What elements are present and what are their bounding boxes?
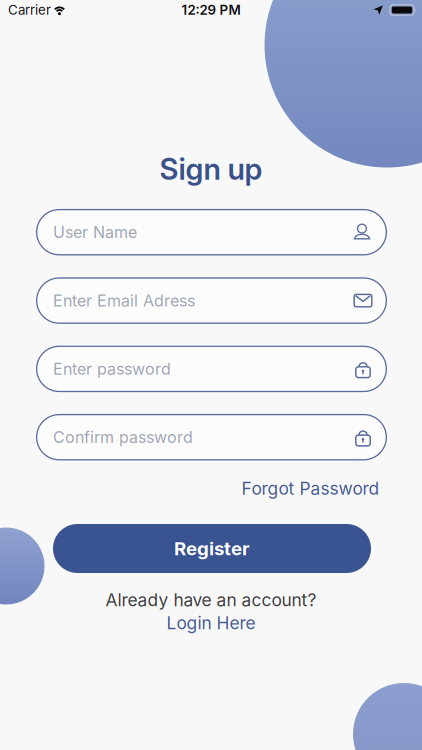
button[interactable]: Register bbox=[53, 524, 371, 573]
staticText: Enter password bbox=[53, 359, 171, 378]
staticText: Sign up bbox=[159, 152, 262, 186]
staticText: Login Here bbox=[166, 613, 255, 633]
button[interactable]: Enter Email Adress bbox=[36, 277, 387, 324]
staticText: User Name bbox=[53, 223, 137, 242]
button[interactable]: User Name bbox=[36, 209, 387, 255]
staticText: Confirm password bbox=[53, 428, 193, 447]
staticText: Forgot Password bbox=[241, 478, 379, 499]
button[interactable]: Login Here bbox=[166, 613, 255, 633]
staticText: 12:29 PM bbox=[181, 2, 240, 18]
staticText: Carrier bbox=[8, 2, 51, 18]
staticText: Register bbox=[174, 537, 250, 559]
staticText: Already have an account? bbox=[105, 590, 316, 610]
staticText: Enter Email Adress bbox=[53, 291, 195, 310]
button[interactable]: Forgot Password bbox=[241, 478, 379, 499]
button[interactable]: Confirm password bbox=[36, 414, 387, 460]
button[interactable]: Enter password bbox=[36, 346, 387, 392]
